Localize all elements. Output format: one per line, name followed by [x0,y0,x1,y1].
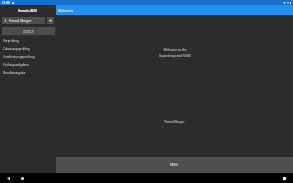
button[interactable]: Settings [47,17,54,24]
staticText: LOGOUT [23,30,34,34]
button[interactable]: Vorprüfung [0,37,56,45]
button[interactable]: Prüfungsaufgaben [0,61,56,69]
staticText: Resultateingabe [3,71,26,75]
staticText: Anerkennungsprüfung [3,55,35,59]
button[interactable]: Anerkennungsprüfung [0,53,56,61]
button[interactable]: LOGOUT [2,27,55,35]
staticText: Pascal Berger [9,18,32,23]
button[interactable]: Resultateingabe [0,69,56,77]
staticText: Prüfungsaufgaben [3,63,29,67]
staticText: Pascal Berger [164,120,185,124]
staticText: MENU [170,163,179,167]
button[interactable]: Recents [280,173,288,183]
staticText: Remote AMG [18,9,38,13]
staticText: Welcome to the Expertenportal ASGB [159,48,191,58]
staticText: Vorprüfung [3,39,19,43]
button[interactable]: MENU [56,157,293,173]
button[interactable]: Back [4,173,12,183]
staticText: Zulassungsprüfung [3,47,30,51]
staticText: 11:35 [2,1,10,5]
button[interactable]: Home [18,173,26,183]
staticText: Welcome [58,8,73,13]
button[interactable]: Zulassungsprüfung [0,45,56,53]
button[interactable]: Pascal Berger [2,17,45,24]
